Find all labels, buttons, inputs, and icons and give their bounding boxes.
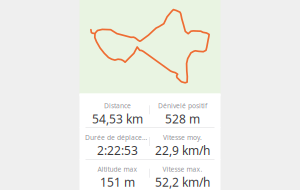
staticText: Vitesse max. <box>162 165 202 174</box>
button[interactable]: Vitesse max. <box>150 160 215 190</box>
staticText: Altitude max <box>97 165 137 174</box>
staticText: Durée de déplacem… <box>85 133 150 142</box>
button[interactable]: Vitesse moy. <box>150 128 215 159</box>
staticText: Distance <box>104 101 131 110</box>
button[interactable]: Distance <box>85 96 150 127</box>
staticText: Dénivelé positif <box>158 101 207 110</box>
button[interactable]: Altitude max <box>85 160 150 190</box>
staticText: Vitesse moy. <box>163 133 202 142</box>
staticText: 54,53 km <box>92 111 143 127</box>
staticText: 2:22:53 <box>97 142 138 158</box>
staticText: 52,2 km/h <box>155 174 210 190</box>
staticText: 528 m <box>165 111 200 127</box>
button[interactable]: Durée de déplacem… <box>85 128 150 159</box>
button[interactable]: Dénivelé positif <box>150 96 215 127</box>
staticText: 151 m <box>100 174 135 190</box>
staticText: 22,9 km/h <box>155 142 210 158</box>
